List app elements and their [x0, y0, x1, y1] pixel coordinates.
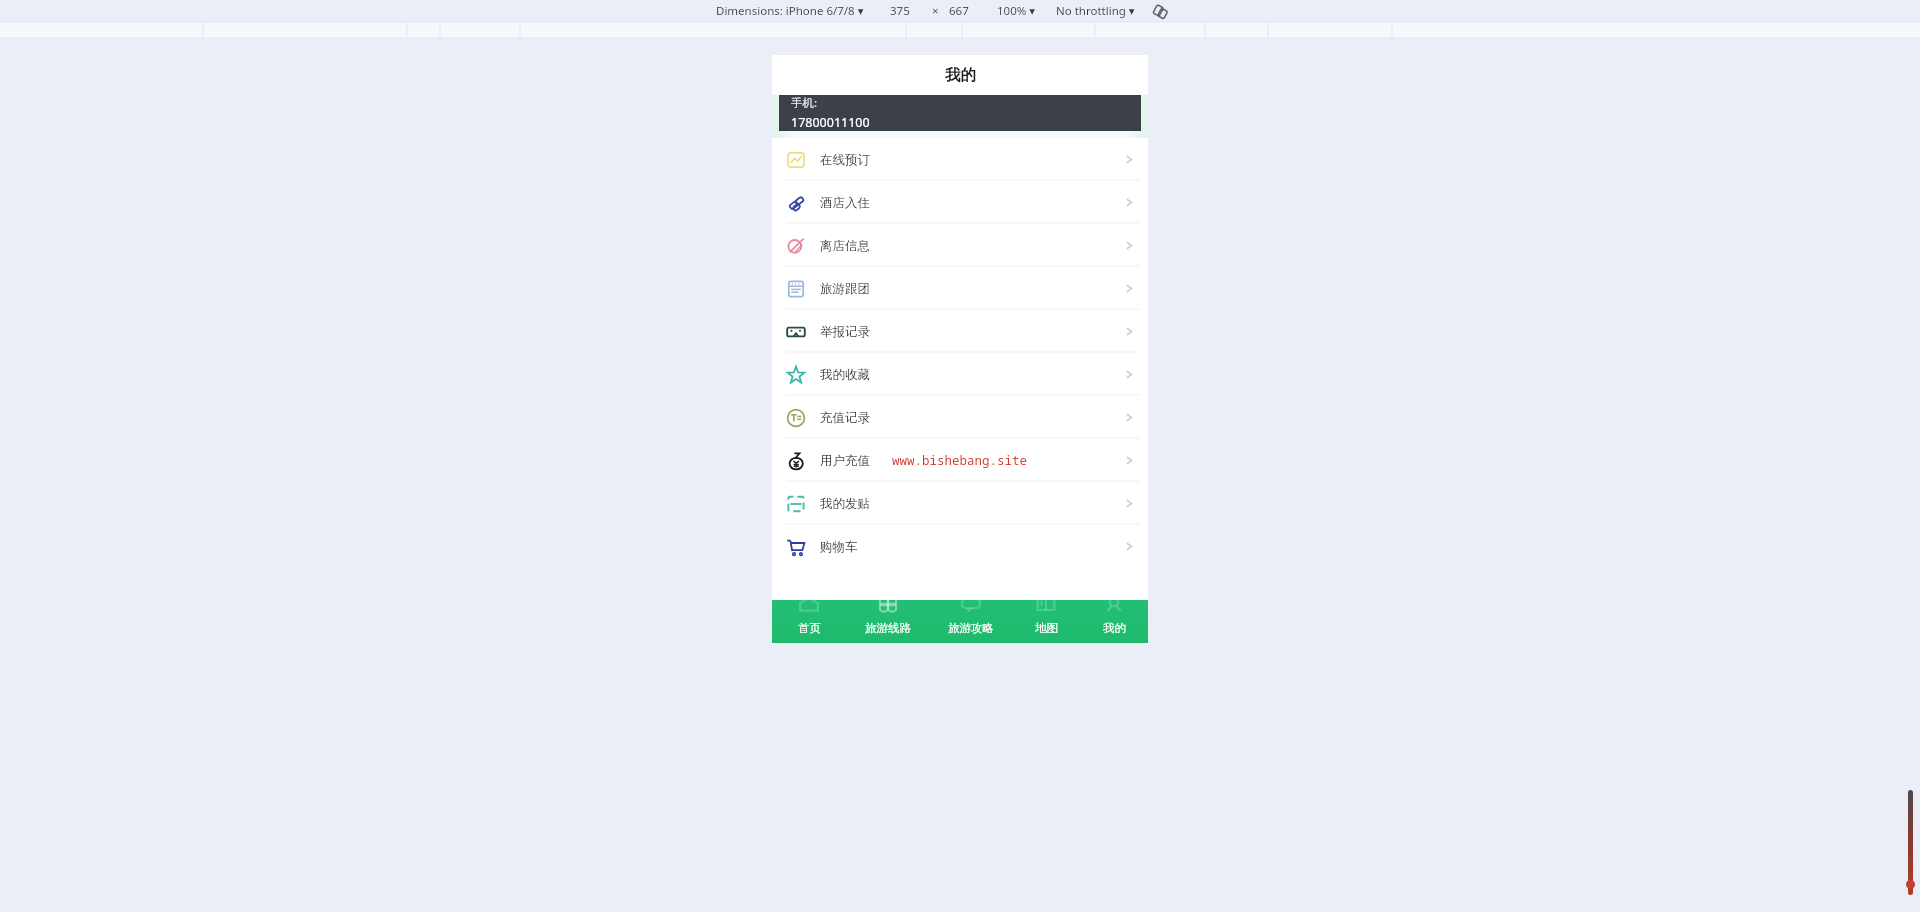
button[interactable]: 我的收藏 [772, 353, 1148, 396]
staticText: 100% ▾ [997, 3, 1036, 19]
button[interactable]: 旅游攻略 [929, 600, 1012, 643]
button[interactable]: 我的 [1080, 600, 1148, 643]
staticText: 充值记录 [820, 410, 870, 426]
staticText: × [932, 3, 939, 19]
staticText: 我的 [1103, 621, 1126, 635]
staticText: Dimensions: iPhone 6/7/8 ▾ [716, 3, 864, 19]
staticText: No throttling ▾ [1056, 3, 1135, 19]
staticText: 旅游攻略 [948, 621, 994, 635]
staticText: 旅游线路 [865, 621, 911, 635]
staticText: 17800011100 [791, 114, 870, 131]
button[interactable]: 购物车 [772, 525, 1148, 568]
staticText: 离店信息 [820, 238, 870, 254]
button[interactable]: Rotate viewport [1151, 2, 1169, 20]
staticText: 旅游跟团 [820, 281, 870, 297]
button[interactable]: 离店信息 [772, 224, 1148, 267]
button[interactable]: 旅游跟团 [772, 267, 1148, 310]
staticText: 375 [890, 3, 910, 19]
staticText: 酒店入住 [820, 195, 870, 211]
staticText: 667 [949, 3, 969, 19]
button[interactable]: 举报记录 [772, 310, 1148, 353]
button[interactable]: 我的发贴 [772, 482, 1148, 525]
staticText: 在线预订 [820, 152, 870, 168]
staticText: 举报记录 [820, 324, 870, 340]
staticText: 地图 [1035, 621, 1058, 635]
staticText: 我的发贴 [820, 496, 870, 512]
staticText: www.bishebang.site [892, 452, 1028, 469]
button[interactable]: 旅游线路 [846, 600, 929, 643]
staticText: 购物车 [820, 539, 858, 555]
staticText: 首页 [798, 621, 821, 635]
button[interactable]: 地图 [1012, 600, 1080, 643]
staticText: 手机: [791, 95, 818, 111]
button[interactable]: 用户充值 [772, 439, 1148, 482]
button[interactable]: 在线预订 [772, 138, 1148, 181]
staticText: 我的 [945, 65, 976, 85]
button[interactable]: 酒店入住 [772, 181, 1148, 224]
button[interactable]: 充值记录 [772, 396, 1148, 439]
button[interactable]: 首页 [772, 600, 846, 643]
staticText: 我的收藏 [820, 367, 870, 383]
staticText: 用户充值 [820, 453, 870, 469]
